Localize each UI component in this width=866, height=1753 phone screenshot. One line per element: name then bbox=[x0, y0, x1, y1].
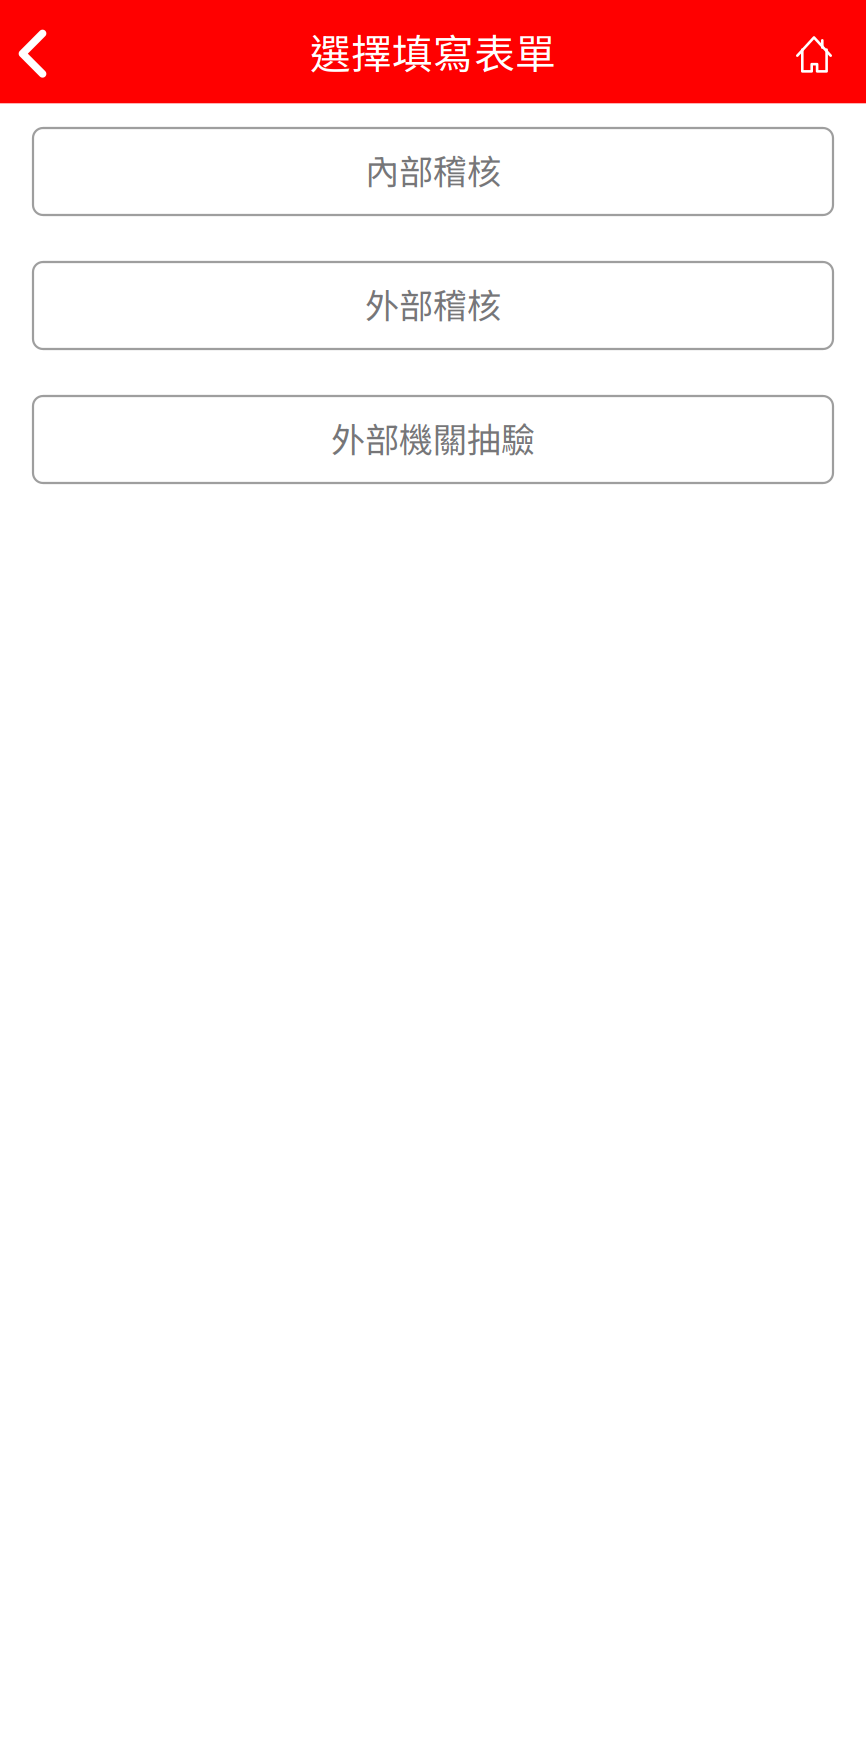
button[interactable]: Back bbox=[1, 9, 63, 95]
staticText: 外部機關抽驗 bbox=[331, 413, 535, 462]
button[interactable]: 內部稽核 bbox=[33, 128, 833, 215]
button[interactable]: 外部機關抽驗 bbox=[33, 396, 833, 483]
staticText: 選擇填寫表單 bbox=[310, 22, 556, 81]
staticText: 外部稽核 bbox=[365, 279, 501, 328]
button[interactable]: 外部稽核 bbox=[33, 262, 833, 349]
button[interactable]: Home bbox=[783, 9, 845, 95]
staticText: 內部稽核 bbox=[365, 145, 501, 194]
